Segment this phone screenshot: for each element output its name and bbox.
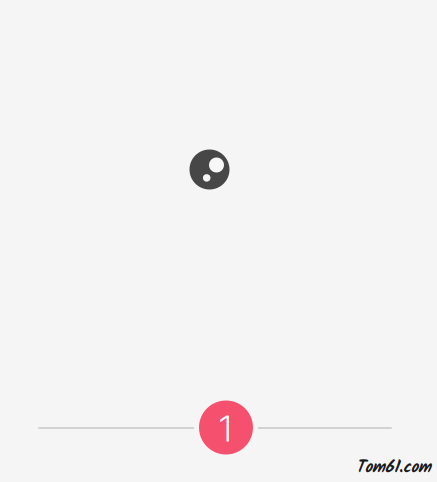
button[interactable]: 1	[194, 395, 258, 459]
staticText: 1	[219, 407, 232, 450]
staticText: Tom61.com	[356, 455, 431, 481]
